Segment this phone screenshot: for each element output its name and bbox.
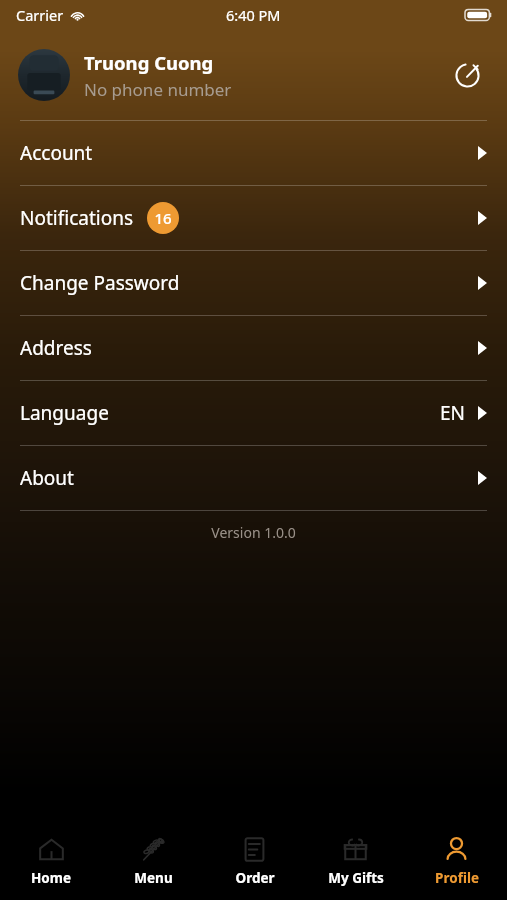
staticText: Address bbox=[20, 335, 92, 361]
button[interactable]: My Gifts bbox=[305, 822, 406, 900]
button[interactable]: Address bbox=[0, 316, 507, 380]
button[interactable]: Language bbox=[0, 381, 507, 445]
staticText: 6:40 PM bbox=[226, 5, 281, 25]
staticText: Home bbox=[31, 869, 71, 887]
button[interactable]: Truong Cuong bbox=[0, 30, 507, 120]
staticText: Profile bbox=[435, 869, 479, 887]
staticText: Notifications bbox=[20, 205, 134, 231]
staticText: Version 1.0.0 bbox=[211, 523, 296, 542]
staticText: Menu bbox=[134, 869, 173, 887]
staticText: 16 bbox=[154, 208, 172, 228]
staticText: Order bbox=[235, 869, 275, 887]
button[interactable]: Notifications bbox=[0, 186, 507, 250]
staticText: About bbox=[20, 465, 74, 491]
staticText: Account bbox=[20, 140, 93, 166]
button[interactable]: Edit profile bbox=[445, 53, 489, 97]
staticText: Truong Cuong bbox=[84, 50, 214, 75]
button[interactable]: Account bbox=[0, 121, 507, 185]
staticText: Language bbox=[20, 400, 109, 426]
button[interactable]: Order bbox=[204, 822, 305, 900]
staticText: EN bbox=[440, 400, 466, 426]
staticText: Change Password bbox=[20, 270, 180, 296]
button[interactable]: Profile bbox=[406, 822, 507, 900]
staticText: Carrier bbox=[16, 5, 64, 25]
button[interactable]: Change Password bbox=[0, 251, 507, 315]
button[interactable]: About bbox=[0, 446, 507, 510]
button[interactable]: Menu bbox=[102, 822, 204, 900]
staticText: No phone number bbox=[84, 78, 232, 101]
staticText: My Gifts bbox=[328, 869, 384, 887]
button[interactable]: Home bbox=[0, 822, 102, 900]
